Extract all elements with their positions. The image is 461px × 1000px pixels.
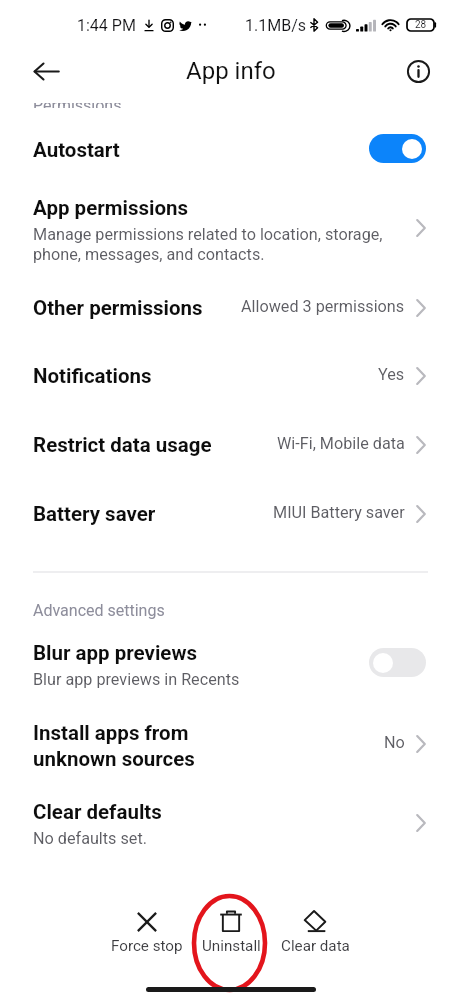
staticText: Clear data [281,937,350,955]
staticText: App permissions [33,196,188,220]
staticText: Other permissions [33,296,203,320]
staticText: Restrict data usage [33,433,212,457]
staticText: Manage permissions related to location, … [33,225,383,264]
staticText: Allowed 3 permissions [241,297,405,316]
button[interactable]: Autostart [0,138,461,170]
staticText: MIUI Battery saver [273,503,405,522]
staticText: Force stop [111,937,183,955]
button[interactable]: Uninstall [189,910,273,955]
staticText: Notifications [33,364,152,388]
staticText: Install apps from unknown sources [33,721,195,771]
staticText: 1:44 PM [77,16,136,35]
staticText: No defaults set. [33,829,147,848]
button[interactable]: Off [369,648,426,677]
button[interactable]: Notifications [0,364,461,396]
button[interactable]: Restrict data usage [0,433,461,465]
staticText: 1.1MB/s [245,16,306,35]
button[interactable]: App permissions [0,196,461,268]
button[interactable]: Blur app previews [0,641,461,691]
button[interactable]: Other permissions [0,296,461,328]
button[interactable]: Battery saver [0,502,461,534]
button[interactable]: Back [28,53,64,89]
staticText: Uninstall [202,937,261,955]
button[interactable]: Force stop [105,910,189,955]
button[interactable]: App details [400,53,436,89]
staticText: Yes [378,365,405,384]
staticText: Wi-Fi, Mobile data [277,434,405,453]
staticText: App info [186,57,276,85]
staticText: Permissions [33,103,122,108]
staticText: Autostart [33,138,120,162]
staticText: No [384,733,405,752]
staticText: Battery saver [33,502,156,526]
staticText: Advanced settings [33,601,165,620]
button[interactable]: On [369,134,426,163]
button[interactable]: Clear defaults [0,800,461,850]
button[interactable]: Clear data [273,910,357,955]
staticText: 28 [415,19,427,31]
staticText: Blur app previews [33,641,197,665]
staticText: Blur app previews in Recents [33,670,240,689]
button[interactable]: Install apps from unknown sources [0,721,461,771]
staticText: Clear defaults [33,800,162,824]
